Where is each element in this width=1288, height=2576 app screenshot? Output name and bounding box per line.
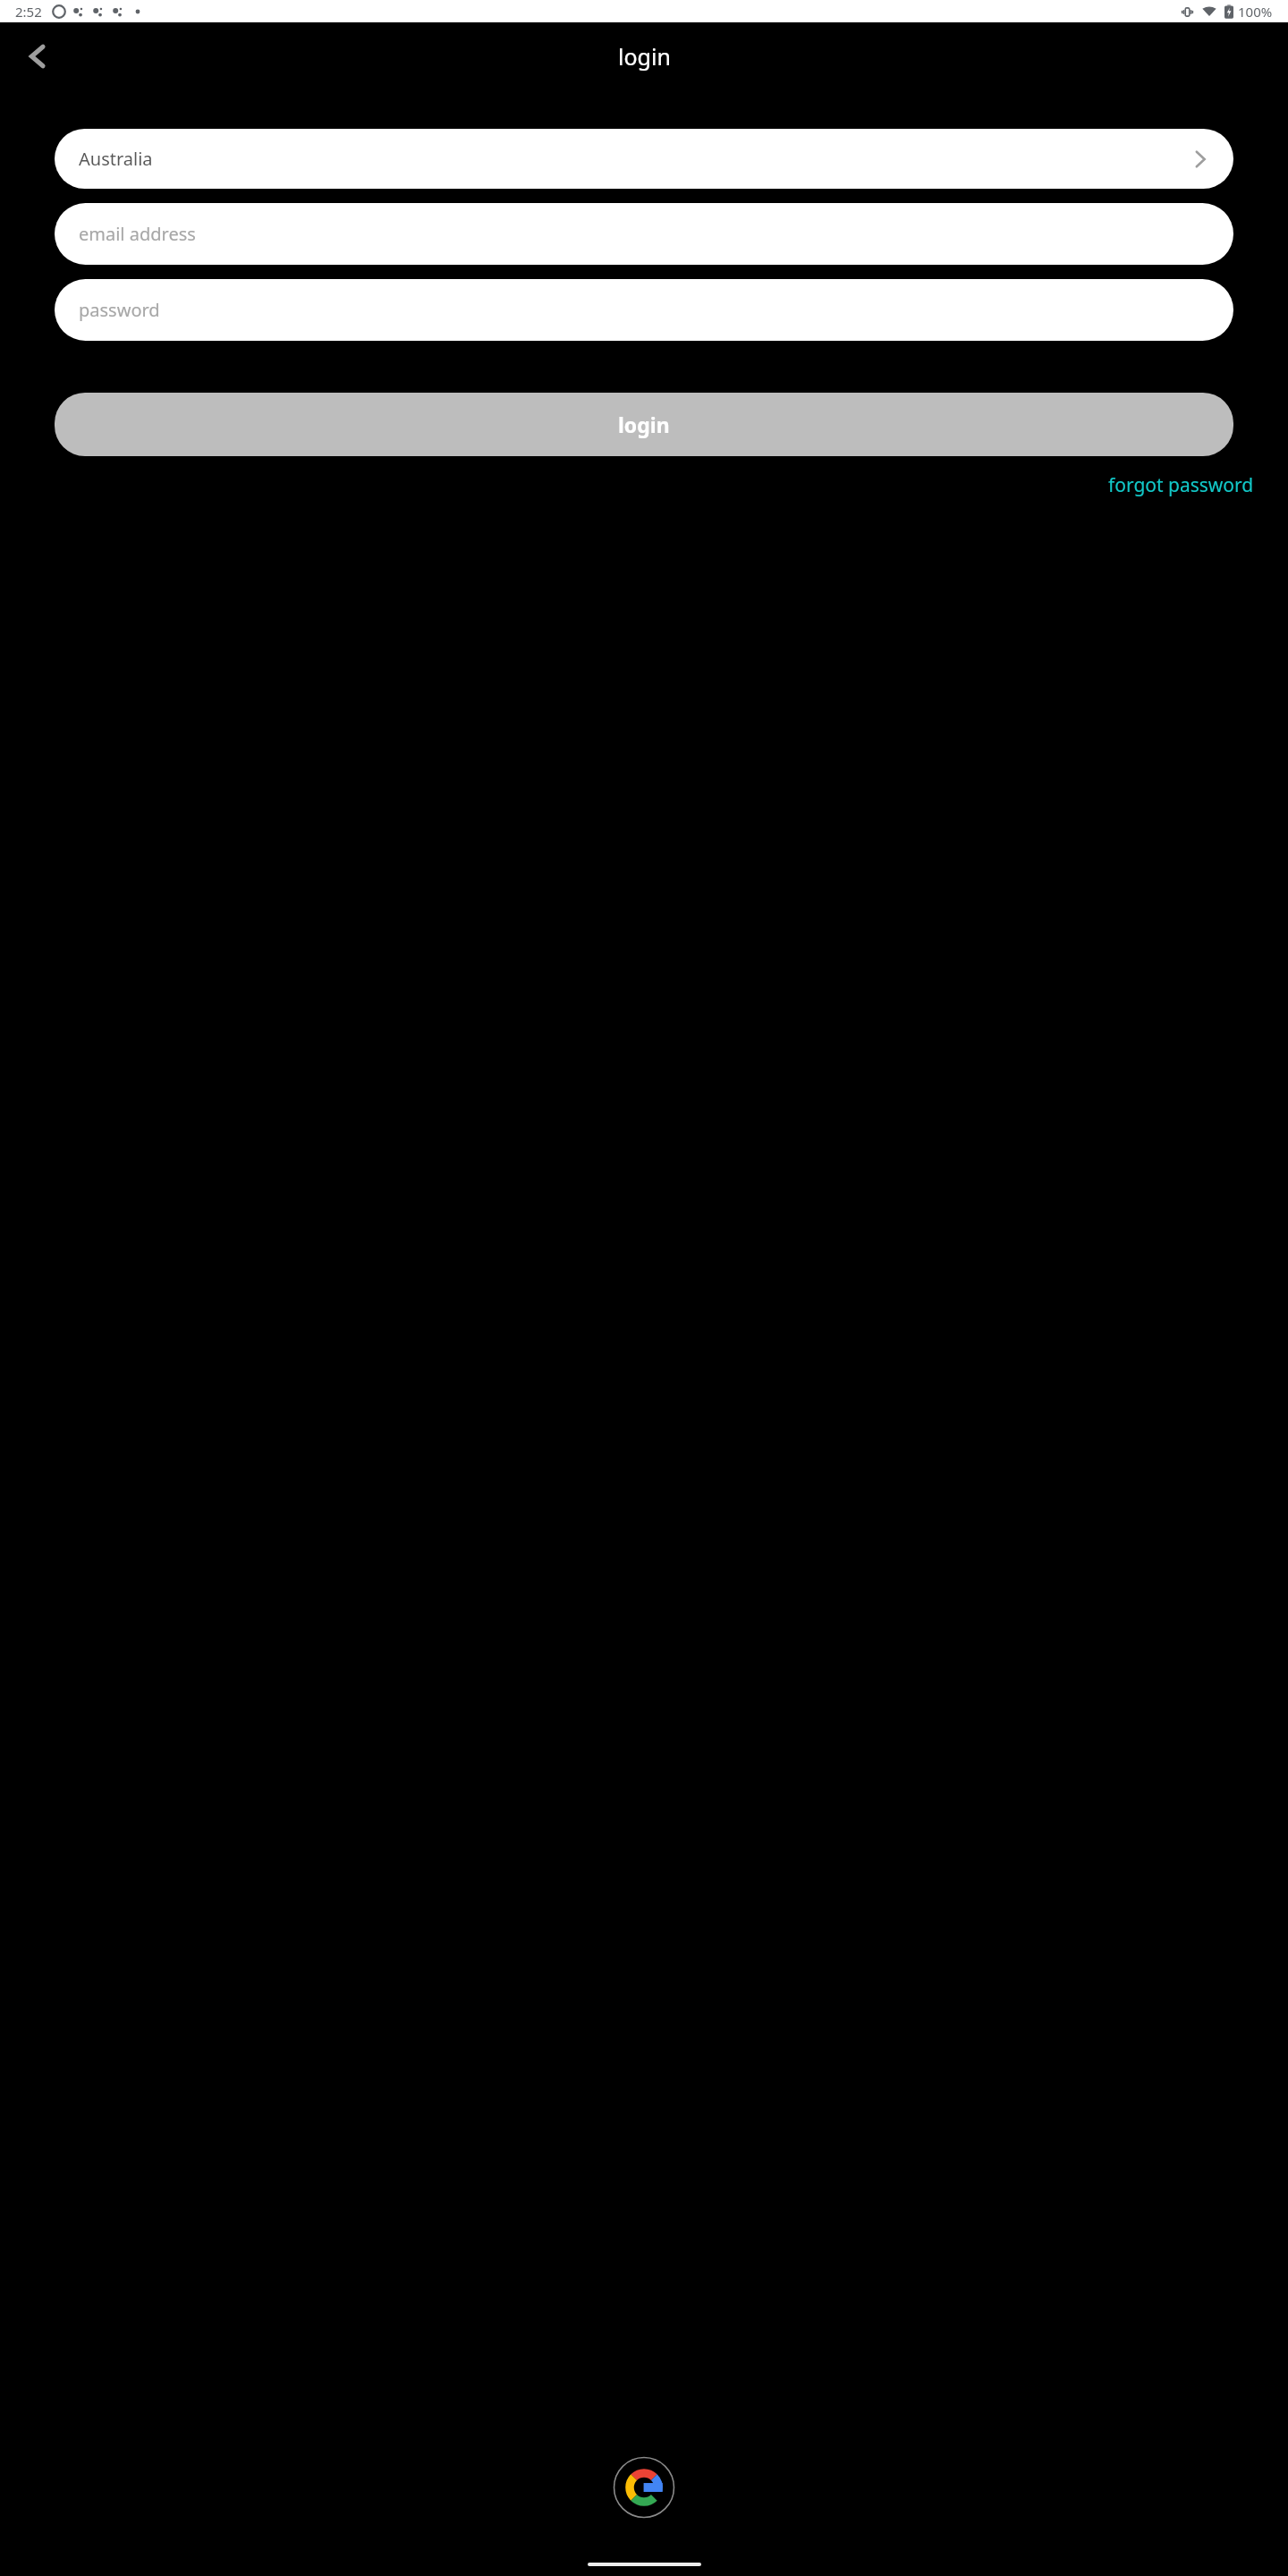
staticText: email address xyxy=(79,222,196,246)
button[interactable]: Back xyxy=(13,31,63,81)
button[interactable]: forgot password xyxy=(1103,467,1259,504)
button[interactable]: Sign in with Google xyxy=(613,2456,675,2519)
staticText: 100% xyxy=(1238,3,1273,21)
staticText: login xyxy=(618,411,670,438)
staticText: login xyxy=(618,41,671,72)
button[interactable]: login xyxy=(55,393,1233,456)
staticText: password xyxy=(79,298,160,322)
staticText: 2:52 xyxy=(15,3,42,21)
button[interactable]: email address xyxy=(55,203,1233,265)
staticText: Australia xyxy=(79,147,153,171)
button[interactable]: password xyxy=(55,279,1233,341)
button[interactable]: Australia xyxy=(55,129,1233,189)
staticText: forgot password xyxy=(1108,472,1254,498)
